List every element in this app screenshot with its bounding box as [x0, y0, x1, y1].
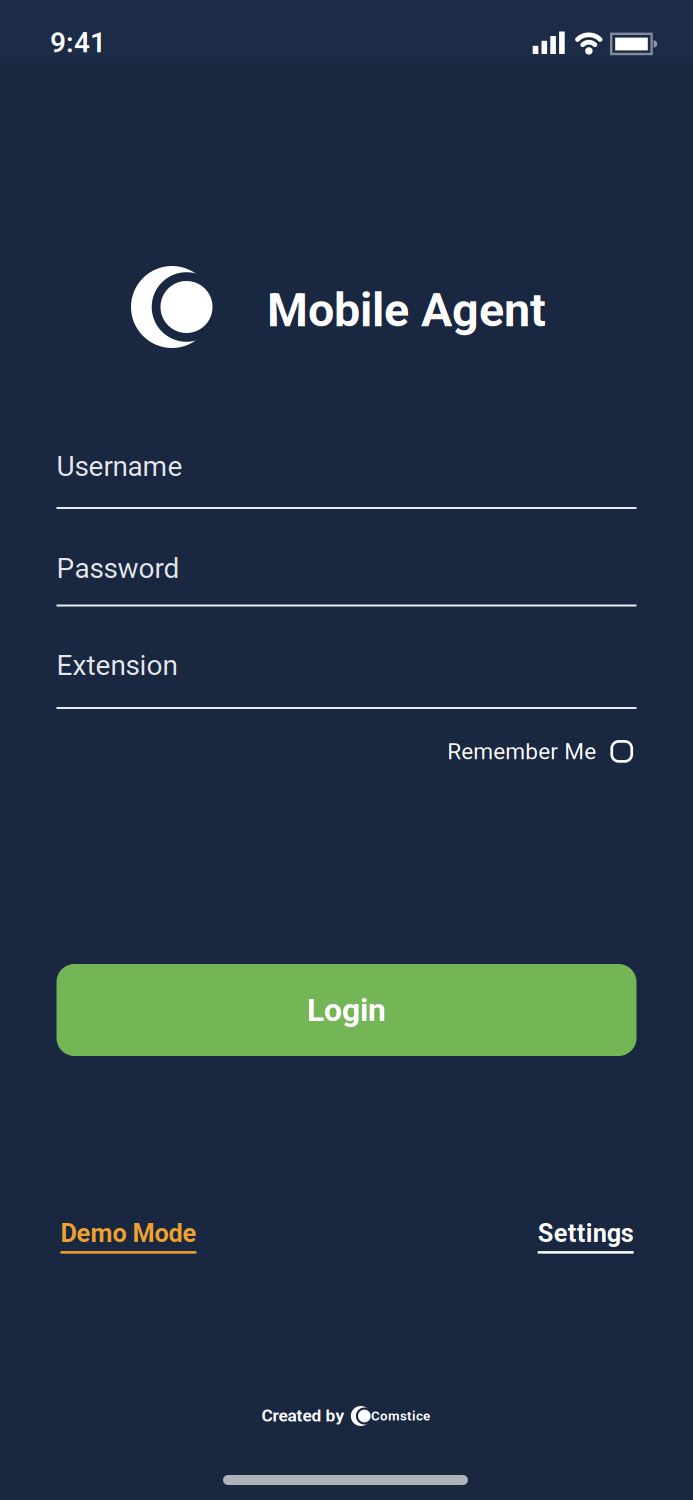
staticText: Remember Me [447, 738, 596, 764]
button[interactable]: Remember Me [447, 729, 632, 773]
button[interactable]: Demo Mode [60, 1219, 196, 1254]
staticText: Comstice [371, 1408, 430, 1424]
staticText: 9:41 [50, 27, 106, 59]
staticText: Demo Mode [60, 1219, 196, 1248]
staticText: Username [56, 450, 182, 482]
staticText: Created by [261, 1406, 344, 1426]
button[interactable]: Login [56, 964, 636, 1056]
staticText: Mobile Agent [267, 284, 546, 337]
staticText: Login [307, 992, 386, 1028]
staticText: Extension [56, 649, 177, 681]
staticText: Settings [538, 1219, 634, 1248]
staticText: Password [56, 552, 179, 584]
button[interactable]: Settings [538, 1219, 634, 1254]
